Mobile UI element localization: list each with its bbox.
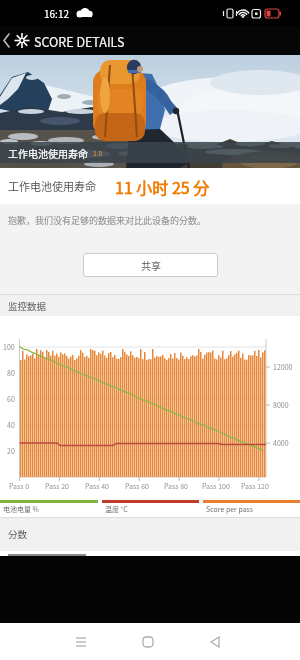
button[interactable]: 电池电量 % [0,497,98,514]
staticText: 16:12 [44,6,69,20]
staticText: SCORE DETAILS [34,32,125,50]
staticText: Pass 100 [202,481,230,491]
staticText: 分数 [8,527,28,541]
staticText: 工作电池使用寿命 [8,178,96,194]
staticText: 温度 °C [105,504,128,514]
button[interactable]: 共享 [83,253,218,277]
staticText: 11 小时 25 分 [115,175,210,198]
staticText: 80 [7,368,15,378]
staticText: 抱歉，我们没有足够的数据来对比此设备的分数。 [8,214,207,227]
staticText: 工作电池使用寿命 [8,146,88,160]
staticText: 共享 [141,258,161,272]
button[interactable]: 温度 °C [102,497,199,514]
staticText: 4000 [273,438,289,448]
staticText: 100 [3,342,15,352]
staticText: 1.0 [93,148,103,157]
staticText: 40 [7,420,15,430]
button[interactable]: Score per pass [203,497,300,514]
staticText: Pass 40 [85,481,109,491]
staticText: 60 [7,394,15,404]
staticText: 电池电量 % [3,504,40,514]
staticText: Pass 0 [9,481,30,491]
staticText: Pass 60 [125,481,149,491]
staticText: 12000 [273,362,293,372]
button[interactable] [201,628,229,656]
staticText: 8000 [273,400,289,410]
staticText: 20 [7,446,15,456]
staticText: Score per pass [206,504,254,514]
button[interactable] [67,628,95,656]
staticText: Pass 120 [241,481,269,491]
staticText: Pass 80 [164,481,188,491]
staticText: Pass 20 [45,481,69,491]
button[interactable] [134,628,162,656]
staticText: 监控数据 [8,299,47,313]
